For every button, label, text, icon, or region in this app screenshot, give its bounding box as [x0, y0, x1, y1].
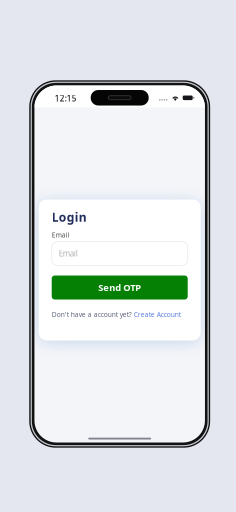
staticText: Send OTP: [98, 281, 141, 294]
staticText: Create Account: [134, 310, 181, 319]
staticText: 12:15: [55, 93, 77, 104]
staticText: Login: [52, 209, 87, 225]
button[interactable]: Don't have a account yet?: [52, 310, 188, 318]
button[interactable]: Send OTP: [52, 275, 188, 299]
staticText: Email: [52, 231, 70, 239]
staticText: Email: [59, 248, 78, 259]
staticText: Don't have a account yet?: [52, 310, 132, 319]
